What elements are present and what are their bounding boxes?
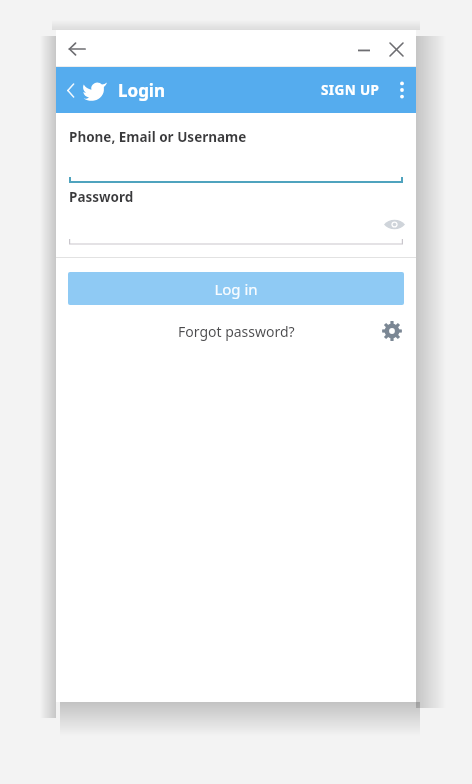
staticText: SIGN UP xyxy=(321,81,380,99)
staticText: Phone, Email or Username xyxy=(69,128,247,146)
button[interactable]: Close xyxy=(380,33,412,65)
button[interactable]: More options xyxy=(388,70,416,110)
button[interactable]: Settings xyxy=(378,317,406,345)
button[interactable]: Back xyxy=(62,34,92,64)
staticText: Forgot password? xyxy=(178,322,295,341)
button[interactable]: Show password xyxy=(56,206,416,246)
button[interactable]: Show password xyxy=(381,211,407,237)
button[interactable] xyxy=(56,146,416,184)
staticText: Login xyxy=(118,79,166,102)
button[interactable]: Minimize xyxy=(348,33,380,65)
button[interactable]: Log in xyxy=(68,272,404,305)
button[interactable]: SIGN UP xyxy=(313,73,388,107)
staticText: Log in xyxy=(214,279,258,299)
button[interactable]: Navigate up xyxy=(62,73,78,107)
staticText: Password xyxy=(69,188,134,206)
button[interactable]: Forgot password? xyxy=(170,316,303,347)
